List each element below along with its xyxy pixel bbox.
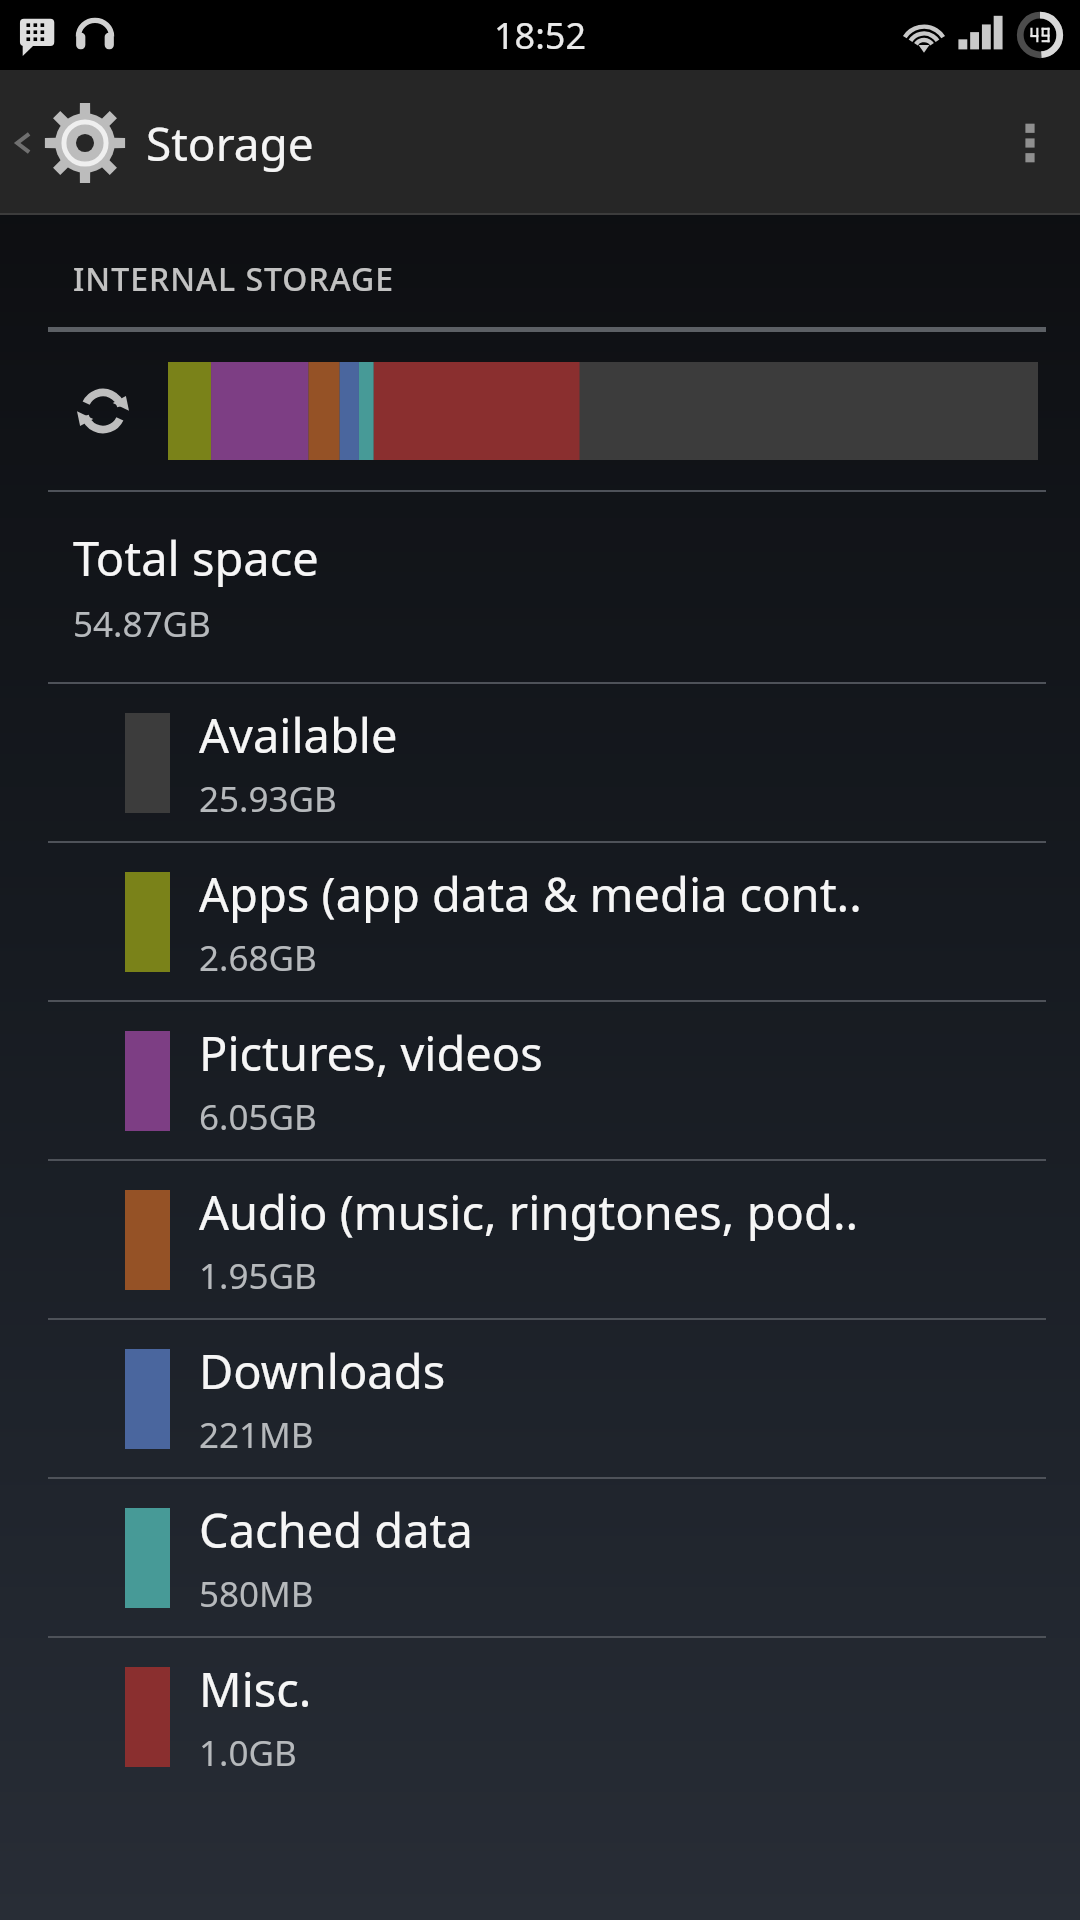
button[interactable]: Refresh [0,332,1080,490]
button[interactable]: Cached data [0,1479,1080,1636]
staticText: 221MB [199,1411,314,1459]
staticText: Apps (app data & media cont.. [199,862,862,926]
staticText: 1.0GB [199,1729,297,1777]
staticText: INTERNAL STORAGE [73,257,395,301]
button[interactable]: Available [0,684,1080,841]
button[interactable]: More options [980,70,1080,215]
button[interactable]: Total space [0,492,1080,682]
other: Navigate up [6,126,40,160]
staticText: 18:52 [494,11,587,60]
staticText: 25.93GB [199,775,337,823]
button[interactable]: Downloads [0,1320,1080,1477]
button[interactable]: Pictures, videos [0,1002,1080,1159]
staticText: Pictures, videos [199,1021,543,1085]
staticText: 54.87GB [73,600,211,648]
staticText: Misc. [199,1657,312,1721]
staticText: 1.95GB [199,1252,317,1300]
staticText: Cached data [199,1498,473,1562]
staticText: Downloads [199,1339,446,1403]
staticText: 6.05GB [199,1093,317,1141]
staticText: Audio (music, ringtones, pod.. [199,1180,859,1244]
staticText: 2.68GB [199,934,317,982]
staticText: Storage [146,112,314,175]
button[interactable]: Misc. [0,1638,1080,1795]
staticText: 580MB [199,1570,314,1618]
button[interactable]: Audio (music, ringtones, pod.. [0,1161,1080,1318]
staticText: Available [199,703,398,767]
button[interactable]: Apps (app data & media cont.. [0,843,1080,1000]
staticText: Total space [73,526,319,590]
other: Refresh [72,380,134,442]
button[interactable]: Navigate up [0,86,334,200]
